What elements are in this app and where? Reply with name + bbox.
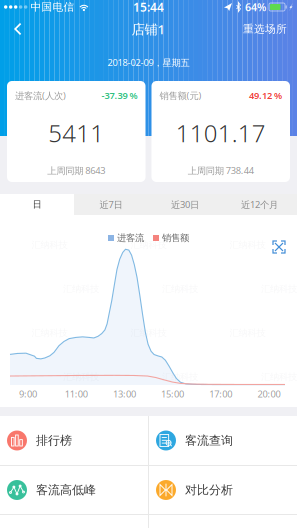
button[interactable]: 近30日 — [148, 194, 222, 215]
staticText: 17:00 — [209, 388, 232, 400]
staticText: 汇纳科技 — [63, 371, 99, 383]
staticText: 15:44 — [133, 0, 164, 15]
staticText: 49.12 % — [249, 89, 282, 102]
staticText: 排行榜 — [36, 433, 72, 448]
staticText: 11:00 — [65, 388, 88, 400]
staticText: 汇纳科技 — [130, 327, 166, 339]
staticText: 销售额 — [162, 232, 189, 244]
staticText: 中国电信 — [30, 0, 74, 13]
staticText: 近12个月 — [241, 198, 278, 211]
button[interactable]: 客流高低峰 — [0, 466, 148, 514]
button[interactable]: 排行榜 — [0, 416, 148, 464]
staticText: 进客流(人次) — [15, 89, 66, 102]
button[interactable]: 近7日 — [74, 194, 148, 215]
staticText: 对比分析 — [185, 483, 233, 497]
staticText: 64% — [245, 0, 266, 14]
staticText: 上周同期 8643 — [47, 164, 105, 177]
button[interactable]: 近12个月 — [222, 194, 297, 215]
staticText: 汇纳科技 — [162, 371, 198, 383]
staticText: 客流查询 — [185, 433, 233, 448]
button[interactable]: Back — [4, 15, 32, 43]
staticText: 客流高低峰 — [36, 483, 96, 497]
button[interactable]: 日 — [0, 194, 74, 215]
staticText: 日 — [32, 199, 41, 210]
staticText: 1101.17 — [176, 117, 266, 149]
staticText: 15:00 — [161, 388, 184, 400]
staticText: 5411 — [48, 117, 104, 149]
button[interactable]: Fullscreen — [268, 236, 290, 258]
staticText: 重选场所 — [243, 22, 287, 35]
staticText: 汇纳科技 — [130, 239, 166, 251]
button[interactable]: 对比分析 — [149, 466, 297, 514]
staticText: -37.39 % — [101, 89, 137, 102]
staticText: 9:00 — [19, 388, 37, 400]
staticText: 近7日 — [99, 198, 122, 211]
button[interactable]: 进客流(人次) — [7, 81, 145, 182]
staticText: 近30日 — [171, 198, 199, 211]
staticText: 销售额(元) — [159, 89, 201, 102]
staticText: 13:00 — [113, 388, 136, 400]
button[interactable]: 销售额(元) — [151, 81, 290, 182]
button[interactable]: 重选场所 — [237, 15, 293, 43]
staticText: 店铺1 — [131, 20, 165, 38]
staticText: 2018-02-09，星期五 — [107, 56, 189, 69]
staticText: 20:00 — [257, 388, 280, 400]
staticText: 进客流 — [117, 232, 144, 244]
staticText: 上周同期 738.44 — [188, 164, 254, 177]
button[interactable]: 客流查询 — [149, 416, 297, 464]
